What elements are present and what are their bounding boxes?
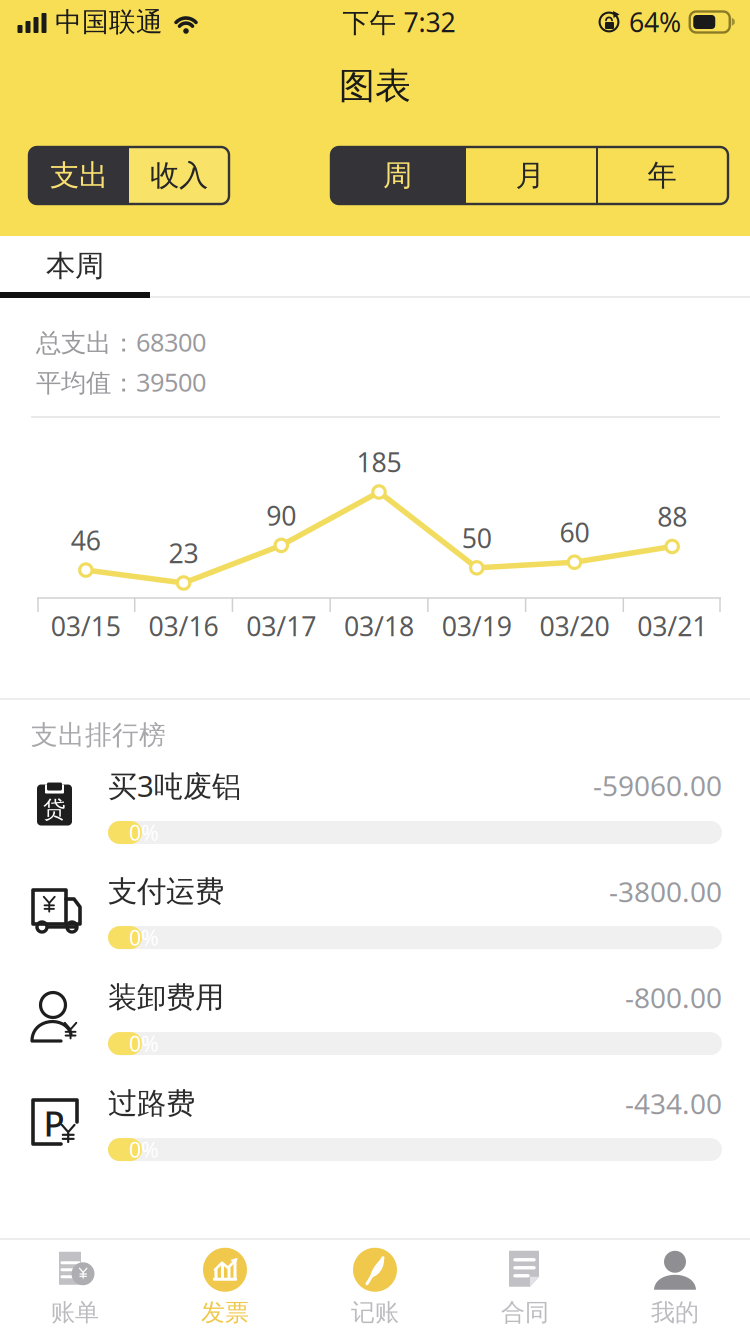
- button[interactable]: 发票: [150, 1240, 300, 1334]
- staticText: 46: [71, 522, 101, 558]
- staticText: 64%: [629, 4, 681, 40]
- button[interactable]: 装卸费用: [0, 964, 750, 1070]
- staticText: 下午 7:32: [342, 4, 455, 40]
- staticText: 03/15: [51, 608, 121, 644]
- staticText: 过路费: [108, 1085, 195, 1121]
- staticText: 03/17: [246, 608, 316, 644]
- button[interactable]: 支出: [29, 147, 129, 204]
- staticText: 03/16: [149, 608, 219, 644]
- staticText: 发票: [201, 1298, 249, 1327]
- button[interactable]: 周: [331, 147, 464, 204]
- staticText: -434.00: [625, 1085, 722, 1122]
- staticText: 支出: [50, 157, 108, 193]
- staticText: 185: [356, 444, 401, 480]
- staticText: 本周: [46, 248, 104, 284]
- staticText: 买3吨废铝: [108, 766, 241, 805]
- staticText: 月: [515, 157, 544, 193]
- staticText: 装卸费用: [108, 979, 224, 1015]
- staticText: 总支出：68300: [36, 325, 206, 359]
- staticText: 记账: [351, 1298, 399, 1327]
- staticText: 平均值：39500: [36, 365, 206, 399]
- staticText: -800.00: [625, 979, 722, 1016]
- button[interactable]: 我的: [600, 1240, 750, 1334]
- staticText: 贷: [43, 796, 66, 823]
- staticText: 03/20: [539, 608, 609, 644]
- button[interactable]: 记账: [300, 1240, 450, 1334]
- staticText: 年: [647, 157, 676, 193]
- staticText: 图表: [339, 64, 411, 108]
- button[interactable]: 账单: [0, 1240, 150, 1334]
- staticText: 账单: [51, 1298, 99, 1327]
- button[interactable]: 本周: [0, 236, 150, 298]
- button[interactable]: 贷: [0, 752, 750, 858]
- staticText: 60: [559, 514, 589, 550]
- staticText: 90: [266, 498, 296, 533]
- staticText: 中国联通: [55, 6, 163, 38]
- staticText: 23: [169, 535, 199, 571]
- staticText: 支付运费: [108, 873, 224, 909]
- button[interactable]: P: [0, 1070, 750, 1176]
- button[interactable]: 合同: [450, 1240, 600, 1334]
- staticText: 支出排行榜: [31, 719, 166, 751]
- staticText: 03/21: [637, 608, 707, 644]
- staticText: -3800.00: [609, 873, 722, 910]
- staticText: P: [43, 1100, 64, 1146]
- staticText: 0%: [129, 818, 159, 847]
- button[interactable]: 收入: [129, 147, 229, 204]
- staticText: 0%: [129, 923, 159, 952]
- staticText: 03/18: [344, 608, 414, 644]
- staticText: 0%: [129, 1029, 159, 1058]
- staticText: 88: [657, 499, 687, 534]
- button[interactable]: 支付运费: [0, 858, 750, 964]
- staticText: 周: [383, 157, 412, 193]
- staticText: 0%: [129, 1135, 159, 1164]
- button[interactable]: 年: [596, 147, 728, 204]
- staticText: 50: [462, 520, 492, 555]
- staticText: 收入: [150, 157, 208, 193]
- button[interactable]: 月: [464, 147, 596, 204]
- staticText: 03/19: [442, 608, 512, 644]
- staticText: 合同: [501, 1298, 549, 1327]
- staticText: -59060.00: [593, 767, 722, 804]
- staticText: 我的: [651, 1298, 699, 1327]
